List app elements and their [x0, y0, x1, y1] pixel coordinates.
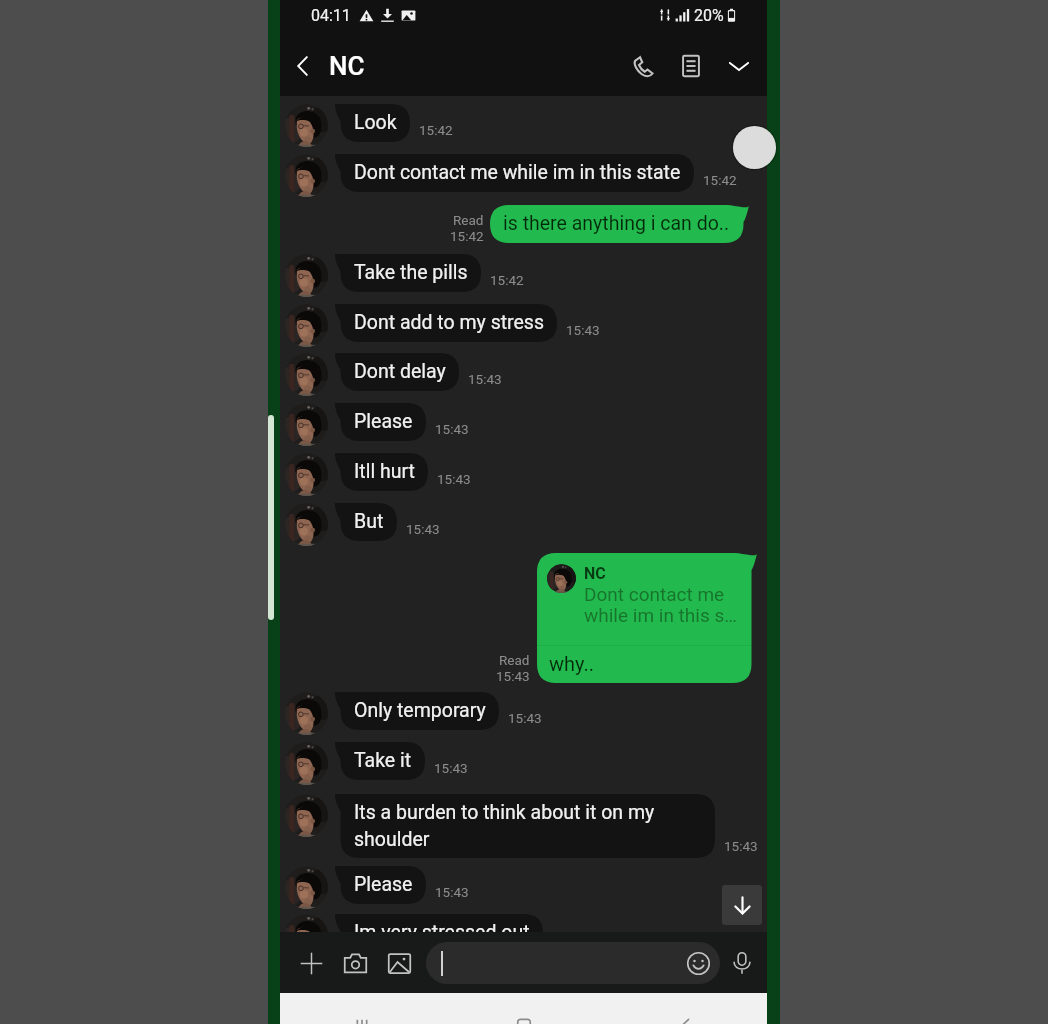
button[interactable]: Look [335, 104, 410, 142]
button[interactable]: Camera [334, 942, 376, 984]
staticText: NC [329, 51, 365, 81]
button[interactable]: Back [280, 43, 326, 89]
staticText: Dont contact me while im in this state [354, 161, 681, 184]
button[interactable]: Dont add to my stress [335, 304, 557, 342]
staticText: 15:43 [437, 471, 471, 487]
staticText: Only temporary [354, 699, 486, 722]
button[interactable]: Home [443, 993, 605, 1024]
staticText: Im very stressed out [354, 921, 530, 932]
staticText: 15:42 [703, 172, 737, 188]
staticText: 15:43 [468, 371, 502, 387]
button[interactable]: Please [335, 866, 426, 904]
staticText: 15:43 [496, 668, 530, 684]
button[interactable]: Its a burden to think about it on my sho… [335, 794, 715, 858]
staticText: 20% [694, 6, 724, 25]
staticText: Its a burden to think about it on my sho… [354, 801, 655, 850]
button[interactable]: Itll hurt [335, 453, 428, 491]
button[interactable]: NC [537, 553, 757, 683]
staticText: Please [354, 410, 413, 433]
staticText: 15:43 [435, 421, 469, 437]
staticText: NC [584, 564, 606, 583]
button[interactable]: Gallery [378, 942, 420, 984]
staticText: 15:42 [419, 122, 453, 138]
staticText: Dont delay [354, 360, 446, 383]
button[interactable]: Dont contact me while im in this state [335, 154, 694, 192]
button[interactable]: Scroll to bottom [722, 885, 762, 925]
staticText: 15:43 [508, 710, 542, 726]
staticText: Dont contact me while im in this s… [584, 583, 737, 627]
button[interactable]: Call [619, 42, 667, 90]
staticText: 15:43 [434, 760, 468, 776]
button[interactable]: Take it [335, 742, 425, 780]
staticText: Dont add to my stress [354, 311, 544, 334]
button[interactable]: Take the pills [335, 254, 481, 292]
staticText: Read [499, 652, 530, 668]
staticText: 15:43 [406, 521, 440, 537]
button[interactable]: But [335, 503, 397, 541]
button[interactable]: Back [605, 993, 767, 1024]
staticText: Look [354, 111, 397, 134]
button[interactable]: More options [715, 42, 763, 90]
staticText: 15:43 [566, 322, 600, 338]
staticText: Take the pills [354, 261, 468, 284]
staticText: is there anything i can do.. [503, 212, 730, 235]
staticText: But [354, 510, 384, 533]
button[interactable]: Notes [667, 42, 715, 90]
button[interactable]: Only temporary [335, 692, 499, 730]
button[interactable]: Dont delay [335, 353, 459, 391]
staticText: 15:42 [490, 272, 524, 288]
button[interactable]: Recents [280, 993, 443, 1024]
button[interactable]: Please [335, 403, 426, 441]
button[interactable]: Im very stressed out [335, 914, 543, 932]
button[interactable]: Voice message [720, 941, 764, 985]
staticText: Itll hurt [354, 460, 415, 483]
staticText: Take it [354, 749, 412, 772]
staticText: 04:11 [311, 6, 351, 25]
button[interactable]: Attach [290, 942, 332, 984]
button[interactable] [426, 942, 720, 984]
staticText: 15:43 [724, 838, 758, 854]
staticText: 15:42 [450, 228, 484, 244]
staticText: Read [453, 212, 484, 228]
staticText: why.. [549, 652, 595, 675]
staticText: 15:43 [435, 884, 469, 900]
staticText: Please [354, 873, 413, 896]
button[interactable]: is there anything i can do.. [490, 205, 749, 243]
